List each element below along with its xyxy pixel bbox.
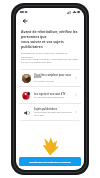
button[interactable]: Retour [20,16,29,25]
staticText: qui ne vous intéressent plus. [21,61,52,64]
button[interactable]: Les sujets et vos suivi #TV [19,87,81,103]
staticText: Avant de réinitialiser, vérifiez les per… [21,29,79,39]
staticText: Envisagez de ne plus suivre les comptes … [21,52,79,58]
staticText: et 108 autres sujets publicitaires [34,96,65,99]
staticText: Sujets publicitaires [34,107,58,110]
staticText: Vous êtes complexe pour vous suivre [34,73,72,79]
staticText: Réinitialiser et continuer à naviguer [29,160,71,163]
staticText: Les sujets et vos suivi #TV [34,92,66,95]
button[interactable]: Vous êtes complexe pour vous suivre [19,70,81,86]
button[interactable]: Réinitialiser et continuer à naviguer [19,157,81,166]
staticText: pas à vos centres d'intérêt, et de suppr… [21,58,79,61]
other: Curseur [40,136,60,156]
staticText: et 12 autres comptes [34,80,54,83]
staticText: Personnaliser les sujets que vous voulez… [34,111,72,117]
staticText: vous suivez et vos sujets publicitaires [21,39,79,49]
button[interactable]: Sujets publicitaires [19,104,81,120]
